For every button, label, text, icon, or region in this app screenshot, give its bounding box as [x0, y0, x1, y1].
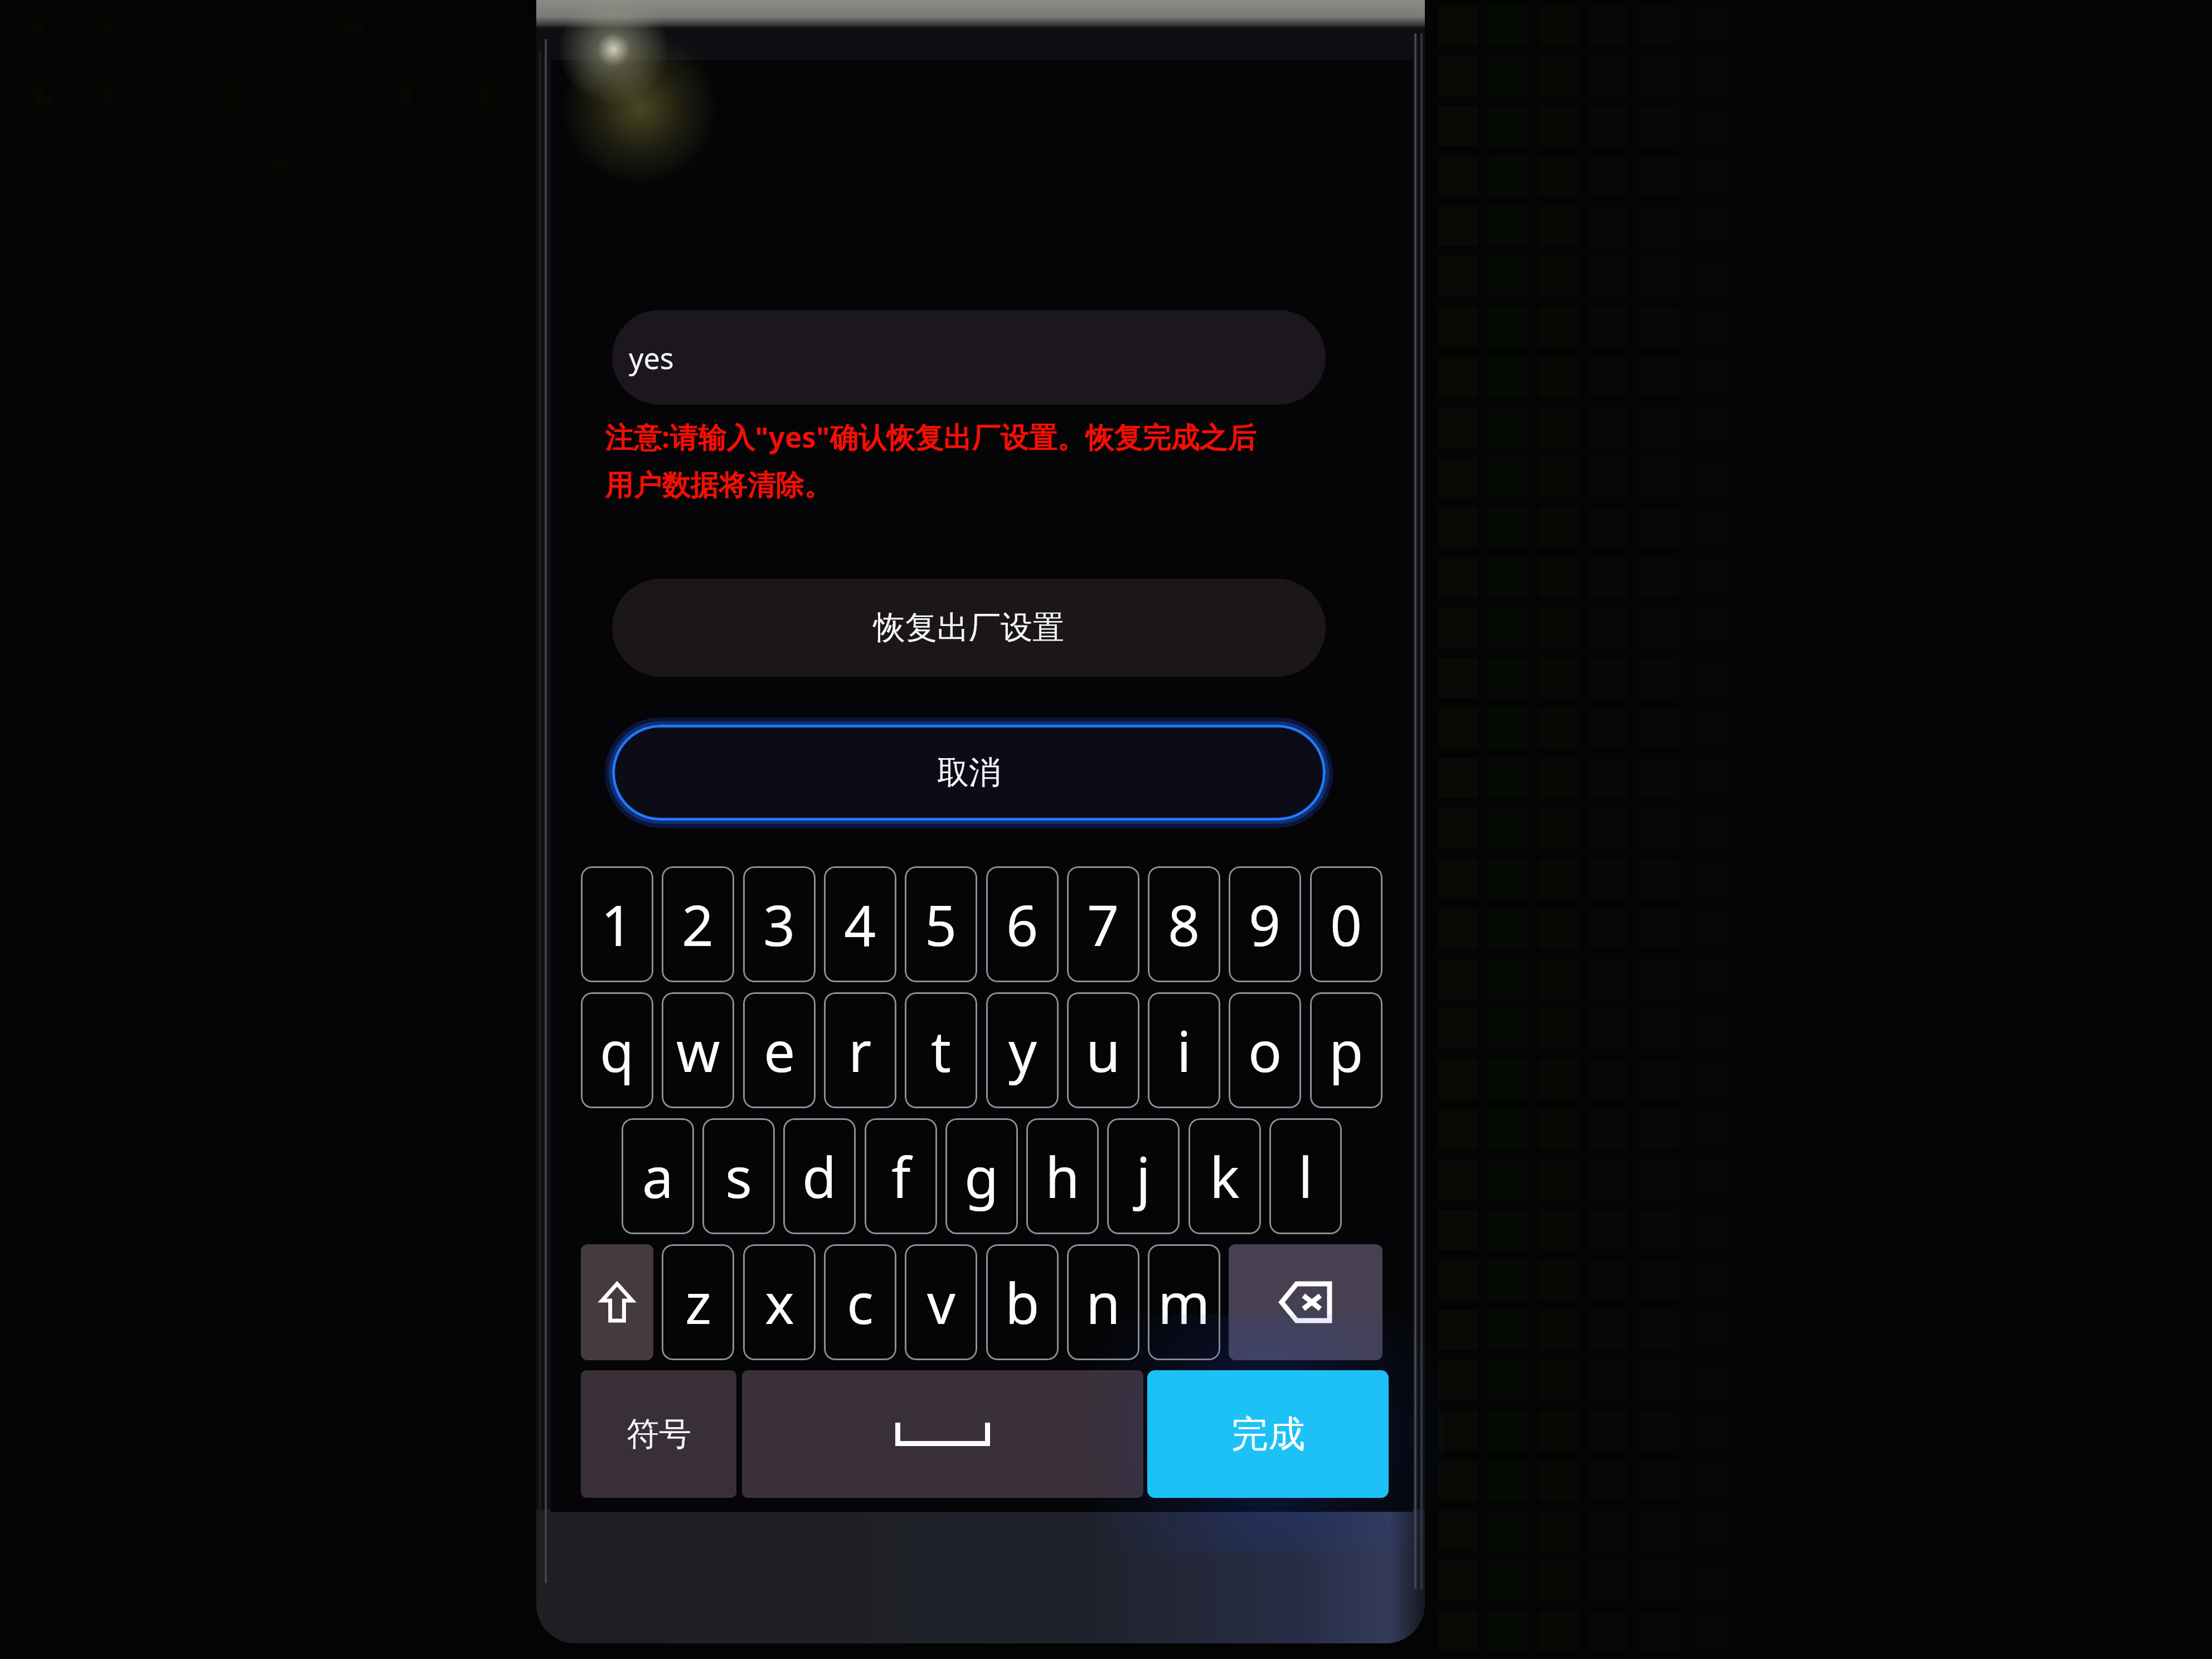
- button[interactable]: 取消: [612, 725, 1326, 821]
- button[interactable]: 符号: [581, 1370, 736, 1498]
- button[interactable]: Shift: [581, 1244, 653, 1360]
- button[interactable]: e: [743, 992, 816, 1108]
- button[interactable]: g: [945, 1118, 1018, 1234]
- staticText: q: [600, 1012, 634, 1088]
- button[interactable]: m: [1148, 1244, 1220, 1360]
- button[interactable]: r: [824, 992, 896, 1108]
- staticText: s: [725, 1138, 752, 1214]
- button[interactable]: x: [743, 1244, 816, 1360]
- staticText: o: [1248, 1012, 1282, 1088]
- staticText: u: [1086, 1012, 1120, 1088]
- staticText: z: [685, 1264, 711, 1340]
- staticText: g: [964, 1138, 999, 1214]
- button[interactable]: w: [662, 992, 734, 1108]
- staticText: x: [765, 1264, 794, 1340]
- staticText: 4: [844, 886, 876, 962]
- button[interactable]: 4: [824, 866, 896, 982]
- button[interactable]: d: [783, 1118, 856, 1234]
- staticText: 9: [1249, 886, 1281, 962]
- staticText: l: [1298, 1138, 1313, 1214]
- button[interactable]: 2: [662, 866, 734, 982]
- button[interactable]: 恢复出厂设置: [612, 579, 1326, 677]
- staticText: 7: [1087, 886, 1119, 962]
- staticText: m: [1158, 1264, 1210, 1340]
- staticText: j: [1136, 1138, 1151, 1214]
- staticText: r: [848, 1012, 872, 1088]
- staticText: 完成: [1231, 1411, 1305, 1457]
- button[interactable]: 6: [986, 866, 1059, 982]
- button[interactable]: n: [1067, 1244, 1139, 1360]
- button[interactable]: h: [1026, 1118, 1099, 1234]
- staticText: c: [847, 1264, 874, 1340]
- button[interactable]: a: [622, 1118, 694, 1234]
- staticText: 恢复出厂设置: [874, 608, 1064, 648]
- staticText: f: [891, 1138, 911, 1214]
- staticText: yes: [629, 338, 674, 377]
- staticText: 8: [1168, 886, 1200, 962]
- button[interactable]: 5: [905, 866, 977, 982]
- button[interactable]: f: [865, 1118, 937, 1234]
- button[interactable]: q: [581, 992, 653, 1108]
- staticText: d: [802, 1138, 837, 1214]
- button[interactable]: 3: [743, 866, 816, 982]
- button[interactable]: u: [1067, 992, 1139, 1108]
- staticText: 1: [601, 886, 633, 962]
- button[interactable]: t: [905, 992, 977, 1108]
- button[interactable]: b: [986, 1244, 1059, 1360]
- button[interactable]: j: [1107, 1118, 1180, 1234]
- button[interactable]: s: [702, 1118, 775, 1234]
- staticText: t: [931, 1012, 952, 1088]
- staticText: 6: [1006, 886, 1039, 962]
- button[interactable]: 8: [1148, 866, 1220, 982]
- button[interactable]: 完成: [1147, 1370, 1389, 1498]
- staticText: 取消: [937, 753, 1001, 793]
- staticText: a: [642, 1138, 674, 1214]
- staticText: k: [1210, 1138, 1240, 1214]
- staticText: w: [676, 1012, 720, 1088]
- staticText: y: [1008, 1012, 1037, 1088]
- button[interactable]: Space: [742, 1370, 1143, 1498]
- button[interactable]: p: [1310, 992, 1382, 1108]
- button[interactable]: k: [1189, 1118, 1261, 1234]
- button[interactable]: o: [1229, 992, 1301, 1108]
- staticText: 0: [1330, 886, 1362, 962]
- button[interactable]: yes: [612, 310, 1326, 405]
- button[interactable]: z: [662, 1244, 734, 1360]
- button[interactable]: i: [1148, 992, 1220, 1108]
- button[interactable]: y: [986, 992, 1059, 1108]
- staticText: 3: [763, 886, 795, 962]
- button[interactable]: Backspace: [1229, 1244, 1382, 1360]
- staticText: e: [764, 1012, 795, 1088]
- staticText: b: [1005, 1264, 1040, 1340]
- staticText: 注意:请输入"yes"确认恢复出厂设置。恢复完成之后 用户数据将清除。: [605, 417, 1257, 503]
- button[interactable]: 7: [1067, 866, 1139, 982]
- staticText: v: [927, 1264, 955, 1340]
- staticText: i: [1177, 1012, 1191, 1088]
- button[interactable]: 1: [581, 866, 653, 982]
- button[interactable]: 9: [1229, 866, 1301, 982]
- button[interactable]: 0: [1310, 866, 1382, 982]
- button[interactable]: v: [905, 1244, 977, 1360]
- staticText: h: [1045, 1138, 1080, 1214]
- staticText: p: [1329, 1012, 1364, 1088]
- staticText: 5: [925, 886, 957, 962]
- staticText: n: [1086, 1264, 1120, 1340]
- button[interactable]: l: [1269, 1118, 1342, 1234]
- button[interactable]: c: [824, 1244, 896, 1360]
- staticText: 2: [682, 886, 714, 962]
- staticText: 符号: [627, 1414, 691, 1454]
